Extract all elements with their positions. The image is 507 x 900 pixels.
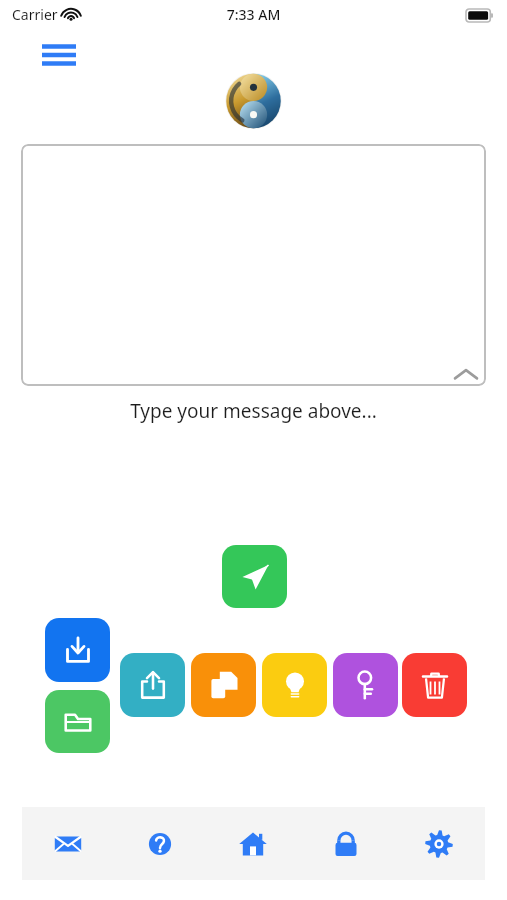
button[interactable]: Delete [402, 653, 467, 717]
staticText: Carrier [12, 5, 58, 24]
button[interactable]: Key [333, 653, 398, 717]
button[interactable]: Copy [191, 653, 256, 717]
button[interactable]: Message input [21, 144, 486, 386]
button[interactable]: Idea [262, 653, 327, 717]
button[interactable]: Home [206, 807, 299, 880]
button[interactable]: Help [114, 807, 206, 880]
button[interactable]: Send [222, 545, 287, 608]
button[interactable]: Settings [392, 807, 485, 880]
button[interactable]: Lock [299, 807, 392, 880]
button[interactable]: Menu [34, 38, 84, 72]
button[interactable]: Share [120, 653, 185, 717]
button[interactable]: Folder [45, 690, 110, 753]
button[interactable]: Import [45, 618, 110, 682]
button[interactable]: Mail [22, 807, 114, 880]
staticText: Type your message above... [0, 398, 507, 424]
staticText: 7:33 AM [0, 5, 507, 24]
